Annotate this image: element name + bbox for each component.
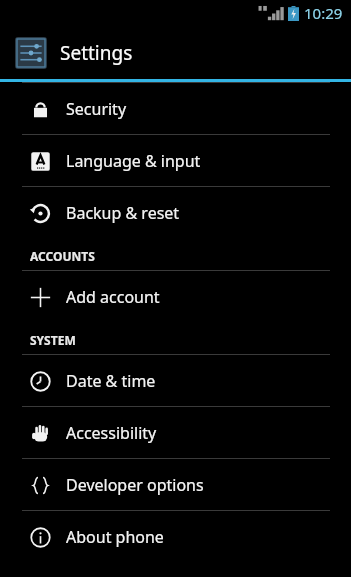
button[interactable]: Security	[0, 83, 351, 134]
button[interactable]: Date & time	[0, 355, 351, 406]
staticText: Date & time	[66, 370, 156, 392]
staticText: Security	[66, 98, 127, 120]
button[interactable]: Add account	[0, 271, 351, 322]
staticText: Language & input	[66, 150, 201, 172]
staticText: ACCOUNTS	[30, 248, 95, 264]
staticText: About phone	[66, 526, 164, 548]
staticText: 10:29	[304, 3, 343, 23]
staticText: Settings	[60, 40, 133, 66]
staticText: Developer options	[66, 474, 204, 496]
button[interactable]: Backup & reset	[0, 187, 351, 238]
button[interactable]: Language & input	[0, 135, 351, 186]
button[interactable]: Developer options	[0, 459, 351, 510]
staticText: Accessibility	[66, 422, 157, 444]
button[interactable]: About phone	[0, 511, 351, 562]
staticText: SYSTEM	[30, 332, 76, 348]
button[interactable]: Accessibility	[0, 407, 351, 458]
staticText: Add account	[66, 286, 160, 308]
staticText: Backup & reset	[66, 202, 180, 224]
